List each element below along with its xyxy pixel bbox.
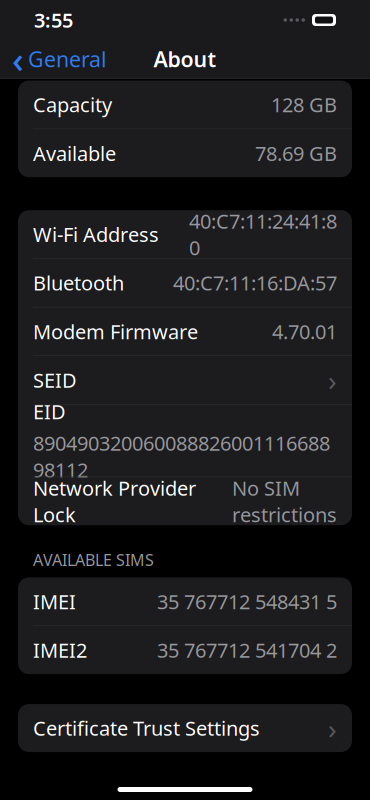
staticText: 128 GB — [271, 91, 337, 118]
staticText: › — [328, 361, 337, 399]
button[interactable]: Certificate Trust Settings — [18, 704, 352, 752]
staticText: › — [328, 709, 337, 747]
staticText: IMEI — [33, 588, 76, 615]
staticText: ‹ — [12, 35, 24, 83]
staticText: AVAILABLE SIMS — [33, 549, 154, 570]
staticText: Certificate Trust Settings — [33, 715, 260, 741]
staticText: Capacity — [33, 91, 112, 118]
staticText: Bluetooth — [33, 269, 124, 296]
staticText: Available — [33, 140, 116, 166]
staticText: 40:C7:11:16:DA:57 — [173, 269, 337, 296]
staticText: Wi-Fi Address — [33, 221, 159, 247]
staticText: EID — [33, 398, 66, 425]
staticText: Network Provider Lock — [33, 475, 196, 528]
button[interactable]: SEID — [18, 356, 352, 404]
staticText: 78.69 GB — [255, 140, 337, 166]
staticText: General — [28, 45, 107, 73]
staticText: No SIM restrictions — [232, 475, 337, 528]
staticText: 3:55 — [34, 7, 73, 33]
staticText: 35 767712 548431 5 — [157, 588, 337, 615]
staticText: 35 767712 541704 2 — [157, 637, 337, 663]
staticText: 89049032006008882600111668898112 — [33, 430, 330, 483]
staticText: 4.70.01 — [272, 318, 337, 345]
staticText: 40:C7:11:24:41:80 — [189, 208, 337, 261]
staticText: IMEI2 — [33, 637, 87, 663]
staticText: Modem Firmware — [33, 318, 198, 345]
staticText: SEID — [33, 367, 77, 393]
staticText: About — [153, 45, 216, 73]
button[interactable]: ‹ — [2, 40, 117, 78]
